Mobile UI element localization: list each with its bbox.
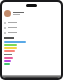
button[interactable] <box>4 9 61 18</box>
button[interactable] <box>4 50 15 52</box>
button[interactable] <box>4 60 11 62</box>
button[interactable] <box>4 47 17 49</box>
button[interactable] <box>4 20 61 25</box>
button[interactable] <box>4 41 26 43</box>
button[interactable] <box>4 57 13 59</box>
button[interactable] <box>4 44 17 46</box>
button[interactable] <box>4 25 61 30</box>
button[interactable] <box>4 30 61 35</box>
button[interactable] <box>4 63 10 65</box>
